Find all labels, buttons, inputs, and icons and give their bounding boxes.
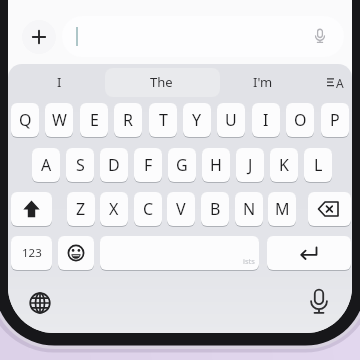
button[interactable]: R [114, 103, 142, 137]
staticText: U [225, 109, 237, 131]
button[interactable]: W [45, 103, 73, 137]
button[interactable] [25, 288, 55, 318]
button[interactable]: I [252, 103, 280, 137]
button[interactable]: V [167, 192, 195, 226]
button[interactable]: E [80, 103, 108, 137]
staticText: The [150, 73, 173, 91]
button[interactable] [308, 192, 351, 226]
button[interactable]: A [32, 148, 60, 182]
staticText: R [123, 109, 133, 131]
button[interactable] [100, 236, 259, 270]
button[interactable]: O [286, 103, 314, 137]
staticText: A [41, 154, 52, 176]
button[interactable] [267, 236, 351, 270]
button[interactable]: 123 [11, 236, 52, 270]
staticText: Z [76, 198, 86, 220]
button[interactable]: K [270, 148, 298, 182]
staticText: P [330, 109, 340, 131]
staticText: Y [192, 109, 202, 131]
staticText: S [76, 154, 85, 176]
button[interactable]: C [134, 192, 162, 226]
button[interactable] [105, 68, 220, 97]
button[interactable]: G [168, 148, 196, 182]
staticText: O [294, 109, 307, 131]
staticText: L [314, 154, 323, 176]
staticText: H [210, 154, 222, 176]
button[interactable]: Y [183, 103, 211, 137]
staticText: W [52, 109, 67, 131]
staticText: M [275, 198, 290, 220]
staticText: ists [243, 256, 255, 266]
button[interactable]: I [19, 70, 99, 94]
button[interactable] [22, 20, 56, 54]
button[interactable]: M [268, 192, 296, 226]
button[interactable]: D [100, 148, 128, 182]
staticText: D [108, 154, 120, 176]
staticText: C [143, 198, 154, 220]
staticText: K [279, 154, 289, 176]
staticText: E [90, 109, 99, 131]
staticText: N [243, 198, 256, 220]
button[interactable]: B [201, 192, 229, 226]
button[interactable]: P [321, 103, 349, 137]
button[interactable]: H [202, 148, 230, 182]
button[interactable]: Z [67, 192, 95, 226]
staticText: A [336, 75, 344, 91]
button[interactable]: The [121, 70, 201, 94]
button[interactable] [304, 288, 334, 318]
staticText: F [144, 154, 153, 176]
button[interactable]: N [235, 192, 263, 226]
button[interactable] [11, 192, 52, 226]
button[interactable]: ists [209, 249, 289, 273]
staticText: X [109, 198, 119, 220]
button[interactable]: X [100, 192, 128, 226]
staticText: V [176, 198, 186, 220]
staticText: J [248, 154, 253, 176]
button[interactable]: T [149, 103, 177, 137]
button[interactable]: S [66, 148, 94, 182]
staticText: T [159, 109, 168, 131]
button[interactable]: J [236, 148, 264, 182]
button[interactable]: Q [11, 103, 39, 137]
button[interactable]: F [134, 148, 162, 182]
staticText: I'm [253, 73, 273, 91]
staticText: G [176, 154, 188, 176]
staticText: 123 [22, 245, 42, 261]
staticText: I [57, 73, 62, 91]
button[interactable]: I'm [223, 70, 303, 94]
staticText: I [263, 109, 269, 131]
staticText: B [210, 198, 221, 220]
button[interactable]: A [321, 70, 349, 96]
button[interactable] [58, 236, 94, 270]
button[interactable]: U [217, 103, 245, 137]
staticText: Q [19, 109, 32, 131]
button[interactable] [62, 16, 344, 57]
button[interactable]: L [304, 148, 332, 182]
